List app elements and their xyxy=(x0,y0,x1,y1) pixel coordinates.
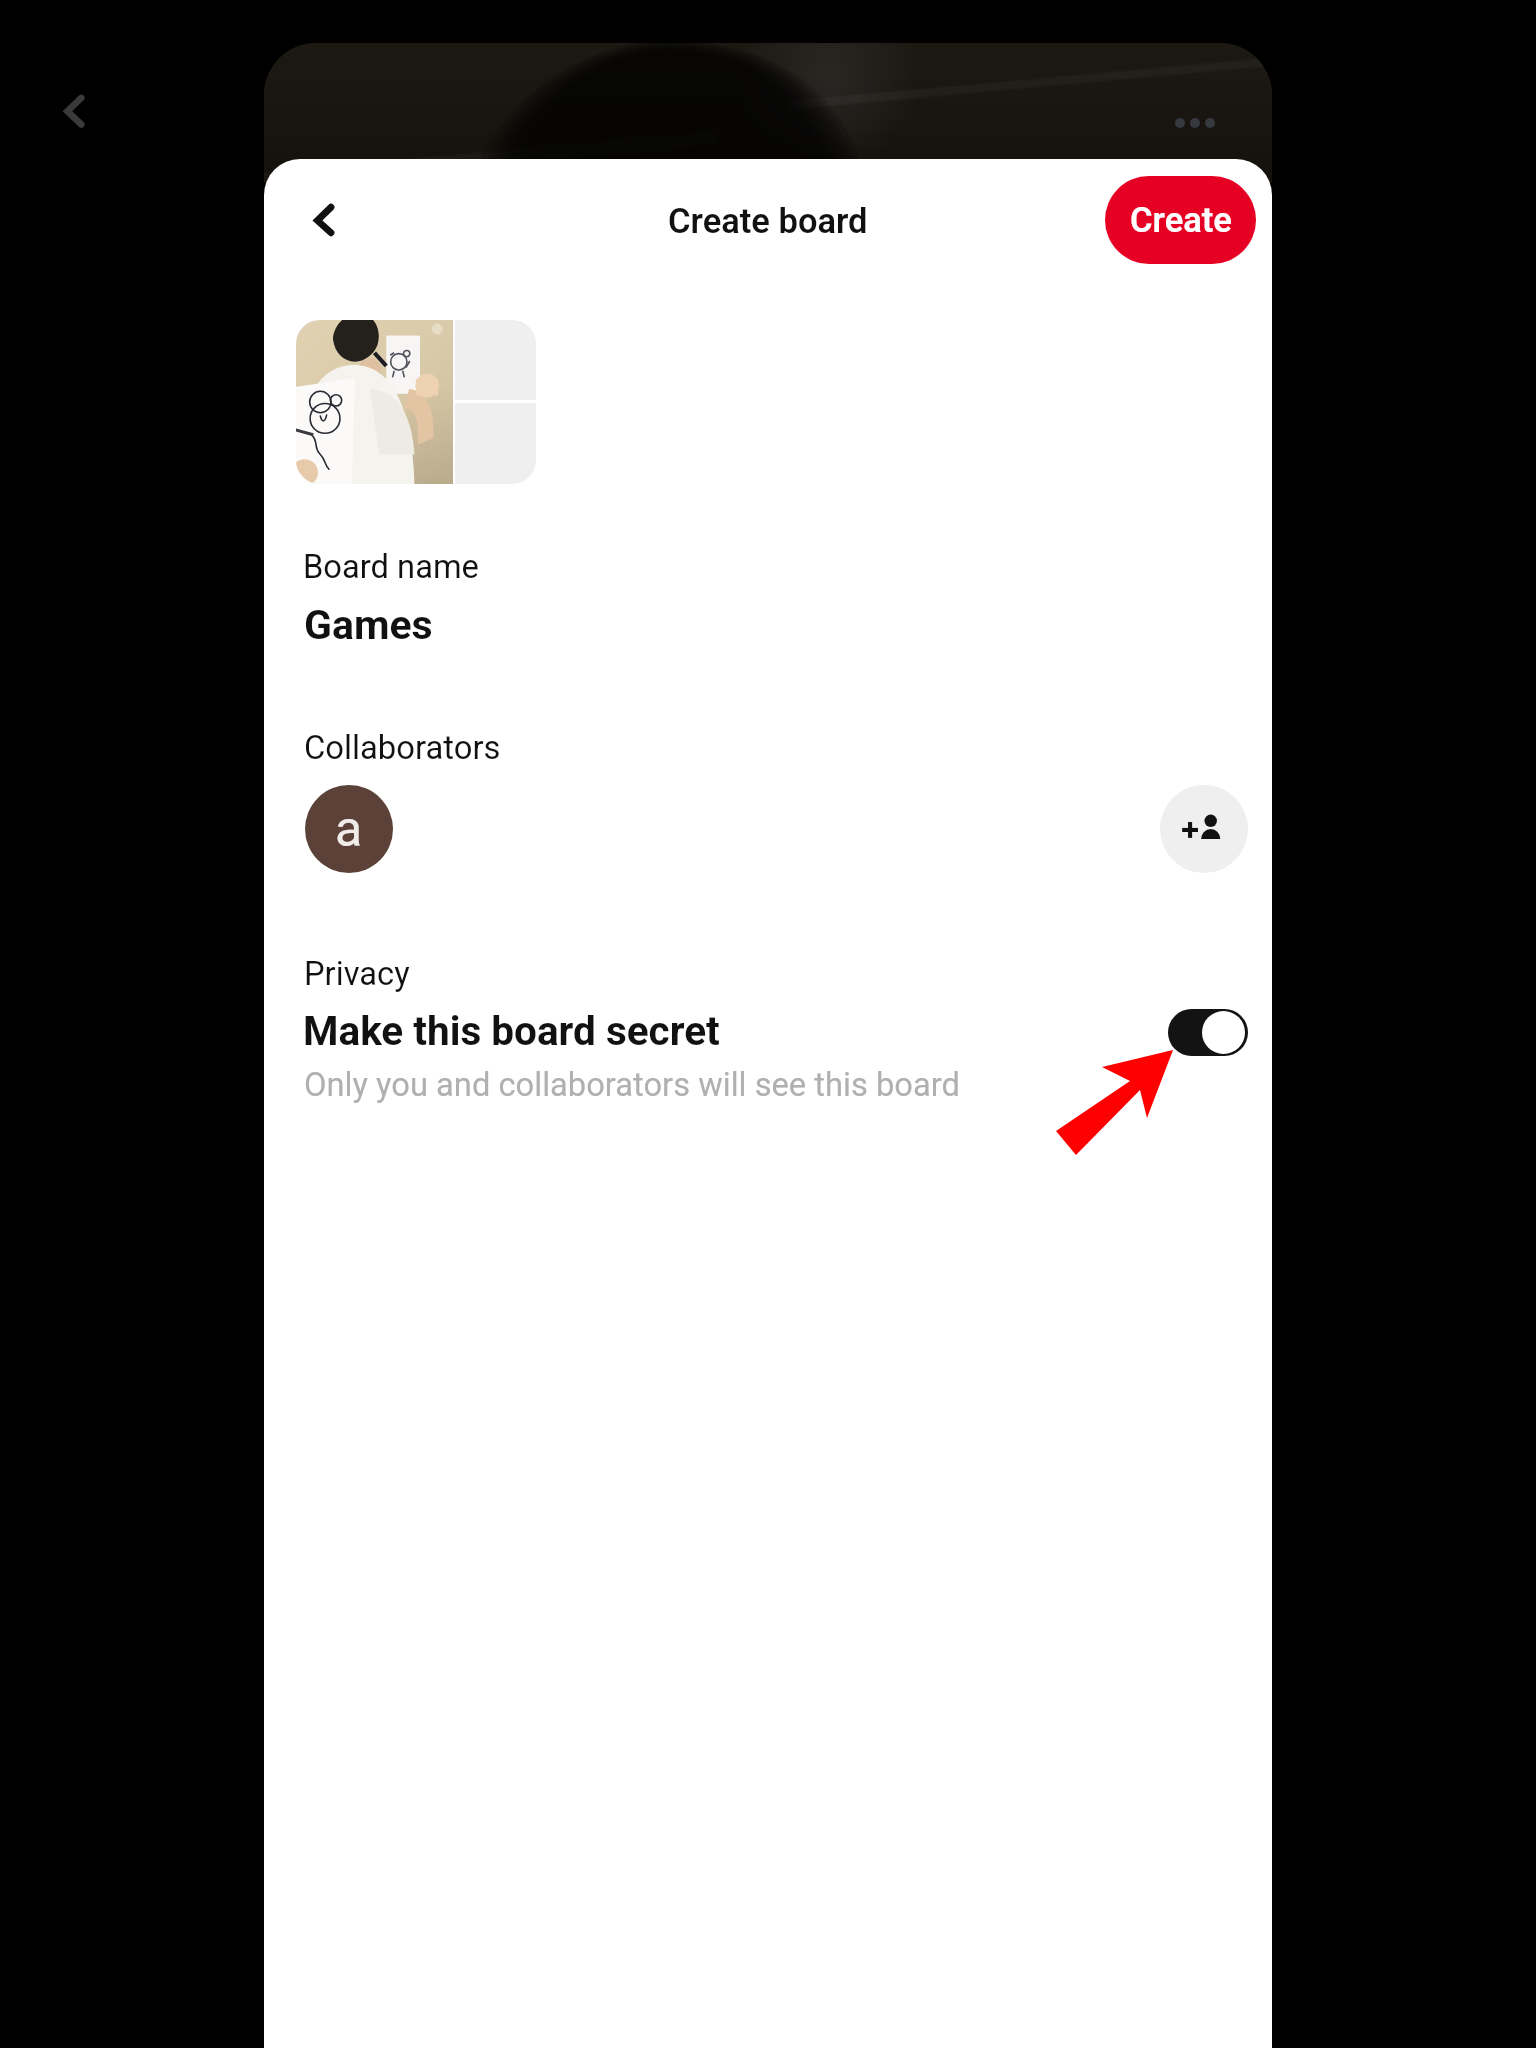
staticText: Only you and collaborators will see this… xyxy=(304,1066,960,1104)
button[interactable]: Create xyxy=(1105,176,1256,264)
staticText: Privacy xyxy=(304,955,410,993)
button[interactable]: Back xyxy=(26,55,122,151)
button[interactable]: Add collaborator xyxy=(1160,785,1248,873)
staticText: Make this board secret xyxy=(303,1007,720,1054)
button[interactable]: Make this board secret xyxy=(1168,1009,1248,1056)
staticText: Games xyxy=(304,601,433,649)
button[interactable]: Board cover image xyxy=(296,320,536,484)
button[interactable]: Back xyxy=(276,166,372,262)
staticText: Board name xyxy=(303,548,479,586)
staticText: Collaborators xyxy=(304,729,501,767)
staticText: Create board xyxy=(668,201,868,241)
staticText: a xyxy=(335,800,363,859)
button[interactable]: More options xyxy=(1175,118,1215,128)
button[interactable]: Collaborator a xyxy=(305,785,393,873)
staticText: Create xyxy=(1130,200,1232,240)
